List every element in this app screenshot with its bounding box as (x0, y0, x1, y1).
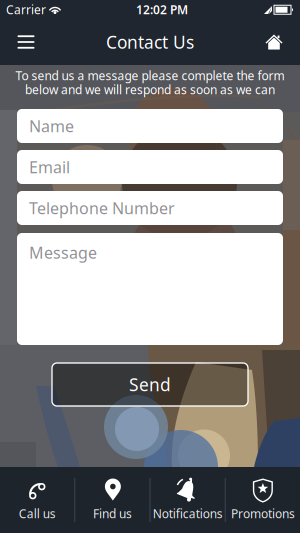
staticText: below and we will respond as soon as we … (25, 81, 275, 97)
staticText: Promotions (231, 505, 295, 521)
staticText: Find us (93, 505, 132, 521)
staticText: Email (29, 156, 70, 178)
button[interactable] (254, 22, 294, 62)
staticText: Call us (19, 505, 56, 521)
button[interactable]: Message (17, 233, 283, 345)
staticText: Carrier (6, 1, 46, 17)
staticText: Message (29, 242, 97, 263)
staticText: Contact Us (106, 30, 194, 53)
button[interactable]: Find us (75, 467, 149, 533)
staticText: Send (129, 373, 171, 396)
button[interactable]: Call us (0, 467, 74, 533)
button[interactable]: Send (52, 363, 248, 406)
button[interactable]: Notifications (150, 467, 225, 533)
staticText: Telephone Number (29, 197, 175, 219)
staticText: To send us a message please complete the… (15, 67, 284, 83)
button[interactable]: Telephone Number (17, 191, 283, 225)
staticText: Notifications (153, 505, 223, 521)
staticText: 12:02 PM (136, 1, 188, 17)
button[interactable]: Email (17, 150, 283, 184)
button[interactable]: Promotions (226, 467, 300, 533)
staticText: Name (29, 115, 74, 137)
button[interactable]: Name (17, 109, 283, 143)
button[interactable] (6, 22, 46, 62)
